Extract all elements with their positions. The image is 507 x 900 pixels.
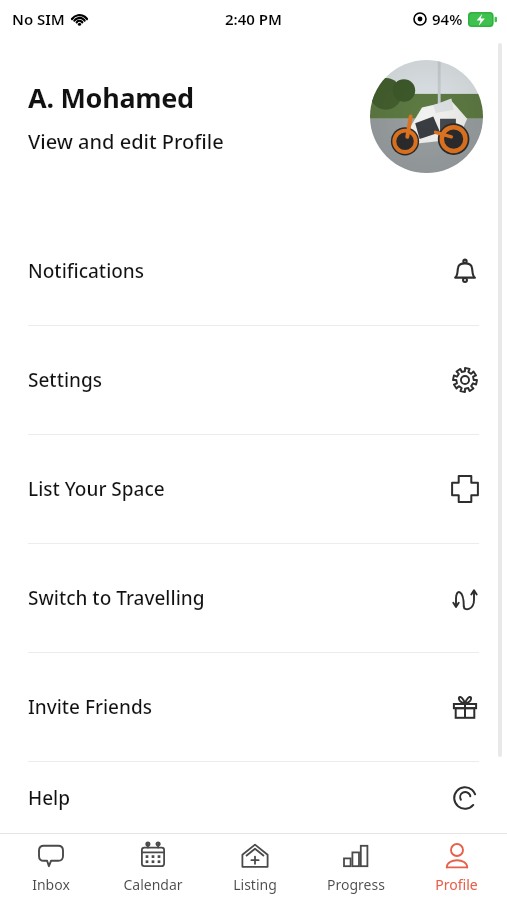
staticText: List Your Space [28,476,449,502]
button[interactable]: Listing [204,834,305,900]
button[interactable]: Profile [406,834,507,900]
staticText: 94% [432,9,463,29]
staticText: Inbox [32,875,70,894]
button[interactable]: Inbox [0,834,102,900]
staticText: Progress [327,875,385,894]
staticText: Invite Friends [28,694,449,720]
button[interactable]: A. Mohamed [0,60,507,173]
staticText: Switch to Travelling [28,585,449,611]
staticText: View and edit Profile [28,128,224,155]
button[interactable]: Switch to Travelling [0,544,507,652]
staticText: Notifications [28,258,449,284]
staticText: Help [28,785,449,811]
button[interactable]: Invite Friends [0,653,507,761]
staticText: Listing [233,875,277,894]
button[interactable]: Settings [0,326,507,434]
button[interactable]: Help [0,762,507,833]
button[interactable]: List Your Space [0,435,507,543]
staticText: Settings [28,367,449,393]
button[interactable]: Calendar [102,834,204,900]
button[interactable]: Profile photo [370,60,483,173]
staticText: 2:40 PM [225,9,282,29]
staticText: A. Mohamed [28,79,194,116]
button[interactable]: Notifications [0,217,507,325]
staticText: No SIM [12,9,65,29]
button[interactable]: Progress [305,834,406,900]
staticText: Profile [435,875,478,894]
staticText: Calendar [123,875,183,894]
